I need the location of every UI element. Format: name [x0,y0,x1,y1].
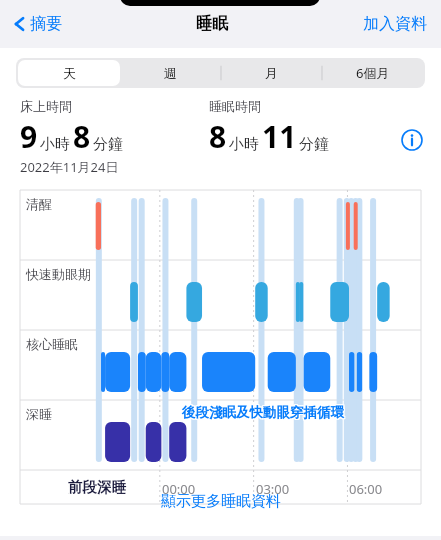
staticText: 2022年11月24日 [20,158,119,176]
button[interactable]: 月 [221,60,322,86]
button[interactable]: 6個月 [322,60,423,86]
staticText: 床上時間 [20,98,72,114]
staticText: 後段淺眠及快動眼穿插循環 [181,405,343,422]
staticText: 後段淺眠及快動眼穿插循環 [182,404,344,421]
staticText: 後段淺眠及快動眼穿插循環 [183,405,345,422]
button[interactable]: 摘要 [12,8,64,40]
staticText: 後段淺眠及快動眼穿插循環 [181,404,343,421]
staticText: 深睡 [26,406,52,422]
staticText: 前段深睡 [67,477,125,495]
staticText: 小時 [229,135,259,154]
staticText: 摘要 [30,14,62,34]
staticText: 清醒 [26,196,52,212]
staticText: 顯示更多睡眠資料 [161,492,281,511]
button[interactable]: 天 [18,60,120,86]
button[interactable]: 顯示更多睡眠資料 [153,484,289,519]
staticText: 03:00 [256,480,290,498]
button[interactable]: 加入資料 [361,8,429,40]
staticText: 分鐘 [299,135,329,154]
staticText: 週 [164,65,177,81]
staticText: 核心睡眠 [26,336,78,352]
staticText: 00:00 [162,480,196,498]
staticText: 加入資料 [363,14,427,34]
staticText: 後段淺眠及快動眼穿插循環 [183,403,345,420]
staticText: 後段淺眠及快動眼穿插循環 [183,404,345,421]
staticText: 6個月 [356,64,390,82]
staticText: 前段深睡 [69,479,127,497]
staticText: 天 [63,65,76,81]
staticText: 前段深睡 [68,478,126,496]
staticText: 前段深睡 [68,477,126,495]
staticText: 9 [20,116,38,157]
staticText: 前段深睡 [69,478,127,496]
staticText: 06:00 [349,480,383,498]
staticText: 後段淺眠及快動眼穿插循環 [182,403,344,420]
staticText: 後段淺眠及快動眼穿插循環 [182,405,344,422]
staticText: 前段深睡 [68,479,126,497]
button[interactable]: 資訊 [399,127,425,153]
staticText: 8 [209,116,227,157]
staticText: 月 [265,65,278,81]
staticText: 前段深睡 [67,479,125,497]
staticText: 小時 [40,135,70,154]
staticText: 21:00 [68,480,102,498]
staticText: 前段深睡 [67,478,125,496]
staticText: 8 [73,116,91,157]
staticText: 後段淺眠及快動眼穿插循環 [181,403,343,420]
staticText: 睡眠時間 [209,98,261,114]
staticText: 快速動眼期 [26,266,91,282]
staticText: 前段深睡 [69,477,127,495]
staticText: 分鐘 [93,135,123,154]
button[interactable]: 週 [120,60,221,86]
staticText: 11 [262,116,297,157]
staticText: 睡眠 [196,14,228,34]
